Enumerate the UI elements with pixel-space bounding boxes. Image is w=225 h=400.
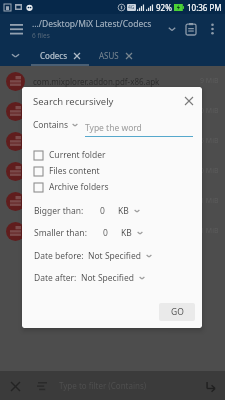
button[interactable]: Close xyxy=(180,92,198,110)
button[interactable]: Clear filter xyxy=(6,377,24,395)
button[interactable]: Files content xyxy=(22,163,202,179)
staticText: Smaller than: xyxy=(34,227,87,239)
staticText: 9 MiB xyxy=(200,76,219,86)
staticText: 1 MiB xyxy=(200,196,219,206)
button[interactable]: KB xyxy=(121,227,143,239)
staticText: com.mixplorer.addon.pdf-x86.apk xyxy=(33,76,160,87)
staticText: Archive folders xyxy=(49,181,109,193)
staticText: 4G xyxy=(128,4,135,11)
staticText: com.mixplorer.addon.pdf-x86.apk xyxy=(33,166,160,177)
button[interactable]: ASUS xyxy=(89,44,142,66)
staticText: 6 files xyxy=(32,31,50,40)
button[interactable]: Codecs xyxy=(31,44,89,66)
button[interactable]: Menu xyxy=(6,19,26,39)
staticText: Files content xyxy=(49,165,100,177)
staticText: Type the word xyxy=(85,122,142,134)
staticText: 0 xyxy=(100,205,105,217)
staticText: GO xyxy=(171,306,184,318)
staticText: 0 xyxy=(103,227,108,239)
staticText: com.mixplorer.addon.pdf-x86.apk xyxy=(33,106,160,117)
staticText: Search recursively xyxy=(33,95,114,108)
staticText: KB xyxy=(121,227,132,239)
staticText: Type to filter (Contains) xyxy=(59,380,147,391)
button[interactable]: com.mixplorer.addon.pdf-x86.apk xyxy=(0,186,225,216)
button[interactable]: More options xyxy=(203,20,221,38)
button[interactable]: 0 xyxy=(97,227,113,239)
button[interactable]: com.mixplorer.addon.pdf-x86.apk xyxy=(0,216,225,246)
staticText: com.mixplorer.addon.pdf-x86.apk xyxy=(33,226,160,237)
staticText: Not Specified xyxy=(81,272,134,284)
staticText: Contains xyxy=(33,119,69,131)
button[interactable]: Current folder xyxy=(22,147,202,163)
button[interactable]: Clipboard xyxy=(182,20,200,38)
staticText: Current folder xyxy=(49,149,106,161)
button[interactable]: Filter options xyxy=(33,377,51,395)
button[interactable]: GO xyxy=(159,303,195,321)
button[interactable]: com.mixplorer.addon.pdf-x86.apk xyxy=(0,156,225,186)
staticText: 10:36 PM xyxy=(187,2,222,13)
staticText: 6 MiB xyxy=(200,136,219,146)
staticText: 0 MiB xyxy=(200,166,219,176)
staticText: 0 MiB xyxy=(200,106,219,116)
staticText: Codecs xyxy=(40,50,67,61)
staticText: 92% xyxy=(156,2,172,13)
button[interactable]: 0 xyxy=(94,205,110,217)
staticText: Date after: xyxy=(34,272,77,284)
button[interactable]: Submit xyxy=(201,377,219,395)
staticText: KB xyxy=(118,205,129,217)
button[interactable]: Sort xyxy=(164,21,180,37)
button[interactable]: Date after: xyxy=(22,267,202,289)
button[interactable]: Archive folders xyxy=(22,179,202,195)
button[interactable]: Expand tabs xyxy=(0,44,31,66)
button[interactable]: com.mixplorer.addon.pdf-x86.apk xyxy=(0,66,225,96)
staticText: com.mixplorer.addon.pdf-x86.apk xyxy=(33,136,160,147)
staticText: Bigger than: xyxy=(34,205,84,217)
button[interactable]: Contains xyxy=(33,119,78,137)
staticText: Not Specified xyxy=(88,250,141,262)
button[interactable]: KB xyxy=(118,205,140,217)
button[interactable]: Date before: xyxy=(22,245,202,267)
staticText: ASUS xyxy=(99,50,119,61)
staticText: .../Desktop/MiX Latest/Codecs xyxy=(32,18,152,30)
button[interactable]: com.mixplorer.addon.pdf-x86.apk xyxy=(0,126,225,156)
button[interactable]: Type the word xyxy=(85,122,193,137)
button[interactable]: com.mixplorer.addon.pdf-x86.apk xyxy=(0,96,225,126)
staticText: Date before: xyxy=(34,250,84,262)
staticText: 1 MiB xyxy=(200,226,219,236)
